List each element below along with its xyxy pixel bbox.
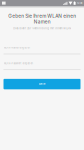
button[interactable]: Weiter xyxy=(3,79,80,89)
staticText: Weiter xyxy=(38,83,45,85)
staticText: WLAN-Namen eingeben xyxy=(3,46,29,49)
staticText: WLAN-Passwort eingeben xyxy=(3,62,32,65)
button[interactable]: WLAN-Namen eingeben xyxy=(3,42,80,54)
staticText: Dies dient zur Verbindung mit Ihrem WLAN xyxy=(13,27,71,30)
button[interactable]: WLAN-Passwort eingeben xyxy=(3,57,80,70)
staticText: Geben Sie Ihrem WLAN einen Namen xyxy=(8,13,76,25)
staticText: 12:08 xyxy=(77,2,82,4)
